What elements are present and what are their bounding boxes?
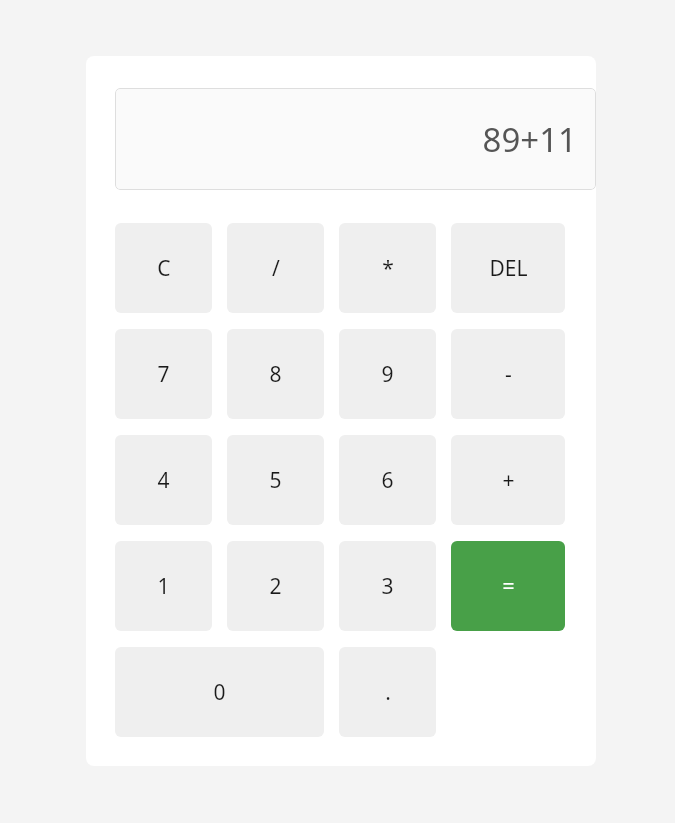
- staticText: =: [502, 572, 515, 601]
- button[interactable]: -: [451, 329, 565, 419]
- staticText: 4: [157, 466, 170, 495]
- button[interactable]: =: [451, 541, 565, 631]
- button[interactable]: 7: [115, 329, 212, 419]
- button[interactable]: .: [339, 647, 436, 737]
- button[interactable]: DEL: [451, 223, 565, 313]
- staticText: C: [157, 254, 171, 283]
- button[interactable]: +: [451, 435, 565, 525]
- staticText: 1: [157, 572, 170, 601]
- staticText: 2: [269, 572, 282, 601]
- staticText: -: [505, 360, 512, 389]
- button[interactable]: 8: [227, 329, 324, 419]
- staticText: 0: [213, 678, 226, 707]
- staticText: DEL: [489, 254, 528, 283]
- button[interactable]: *: [339, 223, 436, 313]
- button[interactable]: 2: [227, 541, 324, 631]
- button[interactable]: C: [115, 223, 212, 313]
- button[interactable]: 1: [115, 541, 212, 631]
- staticText: 6: [381, 466, 394, 495]
- staticText: 8: [269, 360, 282, 389]
- button[interactable]: 9: [339, 329, 436, 419]
- button[interactable]: 5: [227, 435, 324, 525]
- staticText: 7: [157, 360, 170, 389]
- staticText: 89+11: [482, 117, 577, 162]
- staticText: .: [385, 678, 391, 707]
- button[interactable]: 3: [339, 541, 436, 631]
- staticText: +: [502, 466, 515, 495]
- staticText: 5: [269, 466, 282, 495]
- staticText: /: [272, 254, 280, 283]
- button[interactable]: /: [227, 223, 324, 313]
- staticText: *: [382, 254, 394, 283]
- button[interactable]: 0: [115, 647, 324, 737]
- staticText: 9: [381, 360, 394, 389]
- staticText: 3: [381, 572, 394, 601]
- button[interactable]: 6: [339, 435, 436, 525]
- button[interactable]: 4: [115, 435, 212, 525]
